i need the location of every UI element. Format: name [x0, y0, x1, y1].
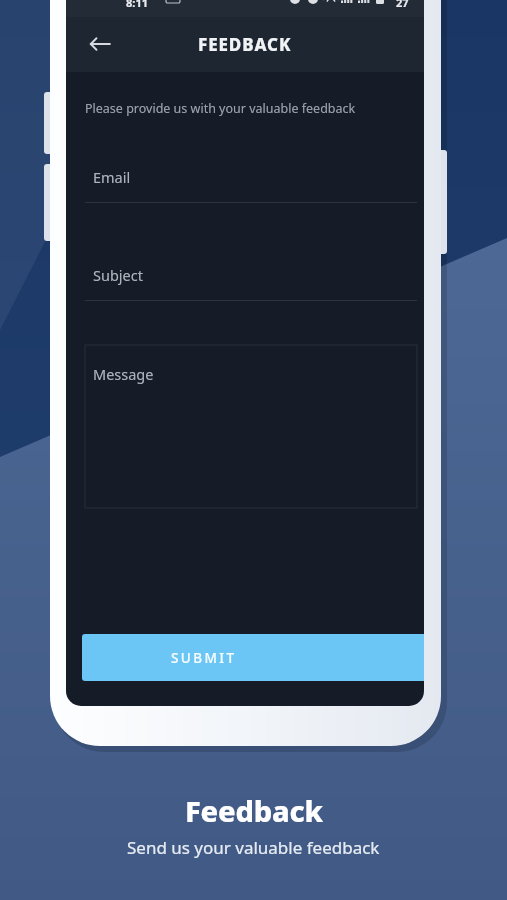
button[interactable]: SUBMIT [82, 634, 424, 681]
staticText: 8:11 [126, 0, 148, 10]
staticText: Subject [93, 265, 143, 285]
staticText: Message [93, 364, 154, 384]
staticText: SUBMIT [171, 649, 237, 667]
staticText: 27 [396, 0, 409, 10]
staticText: Please provide us with your valuable fee… [85, 100, 356, 117]
button[interactable]: Subject [85, 250, 417, 300]
button[interactable]: Email [85, 152, 417, 202]
staticText: Feedback [185, 791, 323, 830]
button[interactable]: Message [85, 345, 417, 508]
staticText: Send us your valuable feedback [127, 836, 380, 859]
staticText: FEEDBACK [198, 33, 292, 56]
staticText: Email [93, 167, 131, 187]
button[interactable]: Back [78, 22, 122, 66]
